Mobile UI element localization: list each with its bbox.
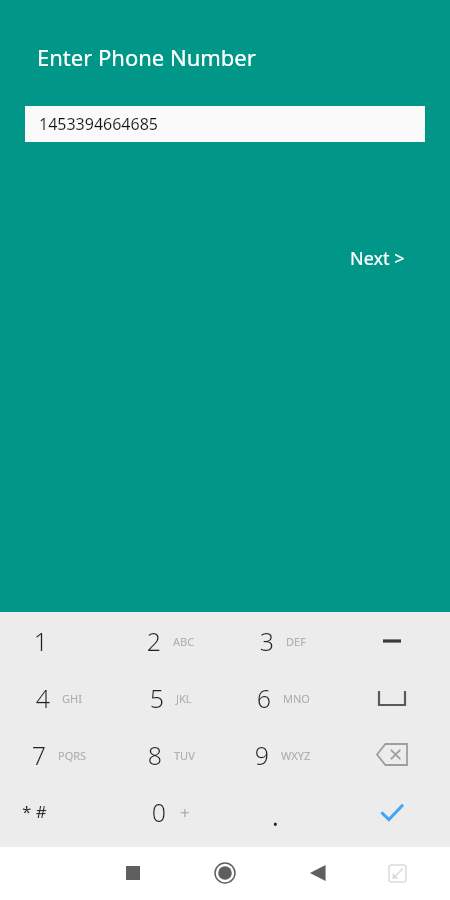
staticText: TUV xyxy=(174,748,195,763)
button[interactable]: Home xyxy=(205,853,245,893)
button[interactable]: Backspace xyxy=(336,726,448,783)
button[interactable]: Hide keyboard xyxy=(377,853,417,893)
staticText: Enter Phone Number xyxy=(37,42,256,72)
staticText: 7 xyxy=(26,738,52,772)
button[interactable]: 7 xyxy=(0,726,112,783)
button[interactable]: Next > xyxy=(340,242,415,275)
button[interactable]: Back xyxy=(298,853,338,893)
button[interactable]: 1453394664685 xyxy=(25,106,425,142)
staticText: DEF xyxy=(286,634,306,649)
button[interactable]: 8 xyxy=(112,726,224,783)
button[interactable]: 3 xyxy=(224,612,336,669)
button[interactable]: 5 xyxy=(112,669,224,726)
staticText: ABC xyxy=(173,634,195,649)
staticText: JKL xyxy=(176,691,192,706)
button[interactable]: dash xyxy=(336,612,448,669)
staticText: WXYZ xyxy=(281,748,311,763)
staticText: * # xyxy=(22,800,47,823)
button[interactable]: space xyxy=(336,669,448,726)
staticText: 9 xyxy=(249,738,275,772)
staticText: 4 xyxy=(30,681,56,715)
staticText: Next > xyxy=(350,246,405,271)
staticText: 2 xyxy=(141,624,167,658)
staticText: 8 xyxy=(142,738,168,772)
staticText: GHI xyxy=(62,691,82,706)
button[interactable]: 6 xyxy=(224,669,336,726)
staticText: 1 xyxy=(28,624,54,658)
staticText: . xyxy=(272,799,279,833)
button[interactable]: 2 xyxy=(112,612,224,669)
staticText: 6 xyxy=(251,681,277,715)
button[interactable]: period xyxy=(224,783,336,840)
staticText: MNO xyxy=(283,691,310,706)
button[interactable]: 1 xyxy=(0,612,112,669)
staticText: 5 xyxy=(144,681,170,715)
staticText: 0 xyxy=(146,795,172,829)
button[interactable]: Done xyxy=(336,783,448,840)
button[interactable]: Recent apps xyxy=(113,853,153,893)
button[interactable]: 0 xyxy=(112,783,224,840)
staticText: PQRS xyxy=(58,748,87,763)
staticText: 1453394664685 xyxy=(39,113,158,135)
button[interactable]: 9 xyxy=(224,726,336,783)
button[interactable]: * # xyxy=(0,783,112,840)
staticText: + xyxy=(180,801,190,824)
button[interactable]: 4 xyxy=(0,669,112,726)
staticText: 3 xyxy=(254,624,280,658)
